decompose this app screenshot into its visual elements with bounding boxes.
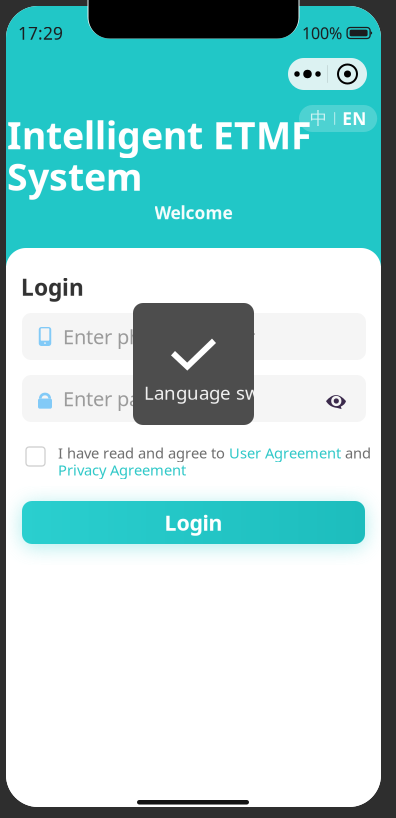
button[interactable]: Show password [326,390,347,406]
staticText: 100% [302,22,342,44]
staticText: 17:29 [18,21,63,44]
button[interactable]: Login [22,501,365,544]
staticText: I have read and agree to [58,443,229,462]
staticText: and [341,443,371,462]
staticText: Enter password [63,385,208,412]
staticText: Privacy Agreement [58,460,186,479]
staticText: Welcome [154,201,232,224]
staticText: 中 [310,108,327,129]
button[interactable]: More options [288,58,327,90]
button[interactable]: User Agreement [229,443,341,462]
button[interactable]: Agree to the terms [26,447,45,466]
staticText: Language switched [144,380,315,405]
staticText: Login [21,272,84,302]
staticText: Intelligent ETMF System [7,110,311,201]
staticText: Login [164,508,222,537]
button[interactable]: Close mini program [328,58,367,90]
button[interactable]: 中 [299,105,377,132]
staticText: User Agreement [229,443,341,462]
staticText: EN [342,107,366,130]
button[interactable]: Privacy Agreement [58,460,186,479]
staticText: Enter phone number [63,323,255,350]
